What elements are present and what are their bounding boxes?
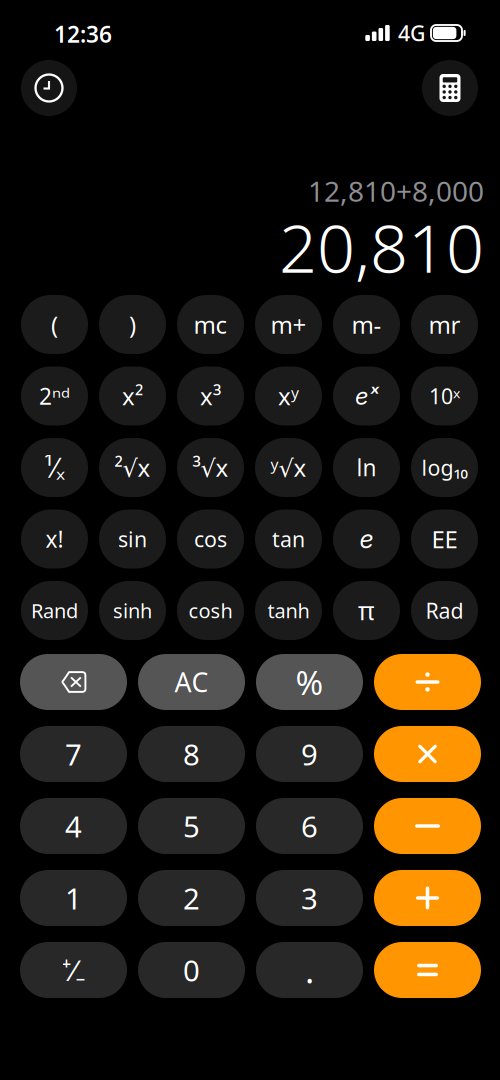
button[interactable]: 3 xyxy=(256,870,363,926)
staticText: Rand xyxy=(31,597,78,624)
staticText: ³√x xyxy=(192,452,228,483)
staticText: 1 xyxy=(65,878,82,917)
button[interactable]: Multiply xyxy=(374,726,481,782)
button[interactable]: mr xyxy=(411,295,478,354)
button[interactable]: mc xyxy=(177,295,244,354)
staticText: mc xyxy=(193,309,227,340)
button[interactable]: History xyxy=(21,60,77,116)
button[interactable]: AC xyxy=(138,654,245,710)
staticText: cosh xyxy=(188,597,232,624)
staticText: tanh xyxy=(267,597,309,624)
staticText: sin xyxy=(118,525,147,553)
staticText: ʸ√x xyxy=(270,452,306,483)
button[interactable]: Subtract xyxy=(374,798,481,854)
button[interactable]: ʸ√x xyxy=(255,438,322,497)
staticText: 12,810+8,000 xyxy=(308,172,484,210)
button[interactable]: m+ xyxy=(255,295,322,354)
button[interactable]: cosh xyxy=(177,581,244,640)
staticText: ) xyxy=(129,309,136,340)
staticText: ( xyxy=(51,309,58,340)
staticText: Rad xyxy=(425,596,463,625)
button[interactable]: 7 xyxy=(20,726,127,782)
staticText: 5 xyxy=(183,806,200,845)
staticText: 2ⁿᵈ xyxy=(39,381,70,411)
button[interactable]: tan xyxy=(255,509,322,568)
button[interactable]: Rand xyxy=(21,581,88,640)
button[interactable]: x² xyxy=(99,366,166,425)
button[interactable]: x³ xyxy=(177,366,244,425)
button[interactable]: x! xyxy=(21,509,88,568)
button[interactable]: m- xyxy=(333,295,400,354)
staticText: e xyxy=(359,524,373,554)
staticText: AC xyxy=(174,664,208,700)
staticText: x² xyxy=(122,380,143,412)
button[interactable]: ⁺⁄₋ xyxy=(20,942,127,998)
staticText: . xyxy=(305,947,314,993)
button[interactable]: 2 xyxy=(138,870,245,926)
staticText: cos xyxy=(194,525,227,553)
button[interactable]: Calculator keypad xyxy=(422,60,478,116)
button[interactable]: xʸ xyxy=(255,366,322,425)
staticText: 7 xyxy=(65,734,82,773)
staticText: tan xyxy=(272,525,305,553)
button[interactable]: 6 xyxy=(256,798,363,854)
button[interactable]: e xyxy=(333,509,400,568)
button[interactable]: eˣ xyxy=(333,366,400,425)
button[interactable]: ³√x xyxy=(177,438,244,497)
staticText: mr xyxy=(428,309,460,340)
staticText: x³ xyxy=(200,380,221,412)
button[interactable]: ²√x xyxy=(99,438,166,497)
button[interactable]: Equals xyxy=(374,942,481,998)
staticText: log₁₀ xyxy=(421,453,467,482)
button[interactable]: 8 xyxy=(138,726,245,782)
staticText: 8 xyxy=(183,734,200,773)
staticText: 3 xyxy=(301,878,318,917)
staticText: EE xyxy=(431,523,457,555)
staticText: m- xyxy=(351,309,381,340)
staticText: 6 xyxy=(301,806,318,845)
staticText: sinh xyxy=(113,597,152,624)
staticText: x! xyxy=(45,524,63,554)
staticText: 20,810 xyxy=(279,203,484,291)
button[interactable]: sin xyxy=(99,509,166,568)
staticText: ²√x xyxy=(114,452,150,483)
button[interactable]: 2ⁿᵈ xyxy=(21,366,88,425)
button[interactable]: log₁₀ xyxy=(411,438,478,497)
staticText: 2 xyxy=(183,878,200,917)
button[interactable]: EE xyxy=(411,509,478,568)
button[interactable]: Add xyxy=(374,870,481,926)
staticText: 4 xyxy=(65,806,82,845)
staticText: eˣ xyxy=(355,381,378,410)
button[interactable]: 4 xyxy=(20,798,127,854)
staticText: 9 xyxy=(301,734,318,773)
button[interactable]: ¹⁄ₓ xyxy=(21,438,88,497)
button[interactable]: Delete xyxy=(20,654,127,710)
button[interactable]: 1 xyxy=(20,870,127,926)
button[interactable]: cos xyxy=(177,509,244,568)
button[interactable]: tanh xyxy=(255,581,322,640)
button[interactable]: sinh xyxy=(99,581,166,640)
staticText: m+ xyxy=(270,309,306,340)
staticText: 0 xyxy=(183,950,200,989)
button[interactable]: π xyxy=(333,581,400,640)
staticText: ¹⁄ₓ xyxy=(44,450,65,485)
staticText: % xyxy=(295,660,323,704)
staticText: 4G xyxy=(398,19,426,47)
button[interactable]: ( xyxy=(21,295,88,354)
button[interactable]: Rad xyxy=(411,581,478,640)
button[interactable]: 9 xyxy=(256,726,363,782)
staticText: ⁺⁄₋ xyxy=(61,950,85,989)
button[interactable]: 5 xyxy=(138,798,245,854)
staticText: ln xyxy=(356,452,376,482)
button[interactable]: . xyxy=(256,942,363,998)
button[interactable]: % xyxy=(256,654,363,710)
button[interactable]: Divide xyxy=(374,654,481,710)
staticText: xʸ xyxy=(278,380,299,412)
button[interactable]: ln xyxy=(333,438,400,497)
button[interactable]: ) xyxy=(99,295,166,354)
staticText: 12:36 xyxy=(54,19,112,49)
staticText: π xyxy=(358,594,375,627)
button[interactable]: 0 xyxy=(138,942,245,998)
button[interactable]: 10ˣ xyxy=(411,366,478,425)
staticText: 10ˣ xyxy=(429,382,460,410)
